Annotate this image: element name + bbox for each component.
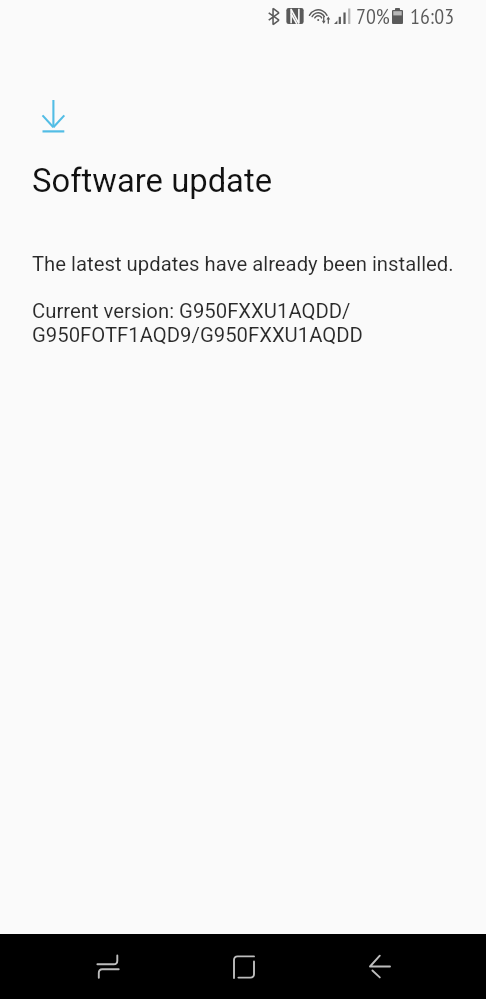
- button[interactable]: Back: [312, 934, 447, 999]
- staticText: 70%: [356, 2, 390, 30]
- staticText: Software update: [32, 162, 273, 200]
- button[interactable]: Software update: [34, 92, 74, 142]
- button[interactable]: Home: [176, 934, 311, 999]
- staticText: The latest updates have already been ins…: [32, 252, 454, 276]
- staticText: Current version: G950FXXU1AQDD/ G950FOTF…: [32, 299, 363, 347]
- button[interactable]: Recent apps: [40, 934, 175, 999]
- staticText: 16:03: [410, 2, 455, 30]
